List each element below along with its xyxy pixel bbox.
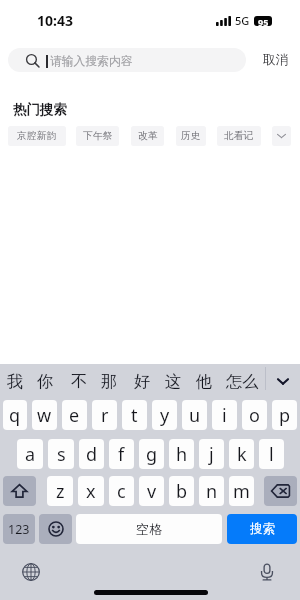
button[interactable]: y (152, 400, 177, 430)
staticText: 下午祭 (83, 130, 113, 142)
staticText: p (279, 403, 291, 428)
staticText: x (86, 479, 96, 504)
staticText: 不 (71, 371, 88, 391)
button[interactable]: 好 (131, 364, 153, 398)
button[interactable]: z (47, 476, 73, 506)
button[interactable]: c (109, 476, 134, 506)
button[interactable]: 取消 (263, 48, 299, 72)
staticText: z (56, 479, 65, 504)
staticText: 他 (196, 371, 213, 391)
button[interactable]: 搜索 (227, 514, 297, 544)
staticText: 10:43 (37, 11, 73, 30)
button[interactable]: a (17, 439, 43, 469)
staticText: s (57, 442, 66, 467)
button[interactable]: w (32, 400, 57, 430)
staticText: 这 (165, 371, 182, 391)
staticText: d (86, 442, 98, 467)
button[interactable]: s (48, 439, 74, 469)
button[interactable]: 怎么 (224, 364, 260, 398)
staticText: o (249, 403, 260, 428)
button[interactable]: l (259, 439, 284, 469)
staticText: i (222, 403, 227, 428)
staticText: 搜索 (250, 521, 275, 537)
staticText: 5G (235, 13, 250, 28)
staticText: 我 (7, 371, 24, 391)
staticText: 空格 (136, 521, 163, 538)
button[interactable]: 改革 (131, 126, 164, 146)
button[interactable]: Backspace (264, 476, 297, 506)
button[interactable]: Hide keyboard (266, 364, 300, 398)
staticText: e (69, 403, 80, 428)
staticText: 改革 (138, 130, 158, 142)
button[interactable]: p (272, 400, 297, 430)
staticText: l (269, 442, 274, 467)
staticText: 123 (8, 521, 30, 538)
button[interactable]: 京腔新韵 (8, 126, 66, 146)
staticText: t (131, 403, 138, 428)
button[interactable]: h (169, 439, 194, 469)
staticText: v (147, 479, 157, 504)
button[interactable]: 北看记 (217, 126, 261, 146)
button[interactable]: d (79, 439, 104, 469)
staticText: k (237, 442, 247, 467)
button[interactable]: r (92, 400, 117, 430)
staticText: a (25, 442, 36, 467)
button[interactable]: Expand hot searches (272, 126, 291, 146)
button[interactable]: 那 (98, 364, 120, 398)
staticText: u (189, 403, 201, 428)
staticText: 北看记 (224, 130, 254, 142)
button[interactable]: 不 (68, 364, 90, 398)
button[interactable]: 你 (34, 364, 56, 398)
staticText: w (37, 403, 52, 428)
staticText: r (101, 403, 109, 428)
staticText: 你 (37, 371, 54, 391)
staticText: y (160, 403, 170, 428)
staticText: g (146, 442, 158, 467)
button[interactable]: Change language (20, 561, 42, 583)
button[interactable]: 空格 (76, 514, 222, 544)
staticText: 取消 (263, 52, 289, 68)
staticText: 怎么 (226, 371, 259, 391)
staticText: 京腔新韵 (17, 130, 57, 142)
staticText: q (9, 403, 21, 428)
staticText: 那 (101, 371, 118, 391)
button[interactable]: o (242, 400, 267, 430)
button[interactable]: u (182, 400, 207, 430)
button[interactable]: n (199, 476, 224, 506)
button[interactable]: g (139, 439, 164, 469)
button[interactable]: 我 (4, 364, 26, 398)
button[interactable]: i (212, 400, 237, 430)
button[interactable]: q (3, 400, 27, 430)
button[interactable]: 下午祭 (76, 126, 119, 146)
button[interactable]: Shift (3, 476, 36, 506)
button[interactable]: 历史 (176, 126, 206, 146)
staticText: 历史 (181, 130, 201, 142)
staticText: m (233, 479, 250, 504)
staticText: 好 (134, 371, 151, 391)
staticText: b (176, 479, 188, 504)
button[interactable]: 123 (3, 514, 35, 544)
button[interactable]: Voice input (256, 561, 278, 583)
staticText: 热门搜索 (13, 101, 67, 118)
button[interactable]: m (229, 476, 254, 506)
staticText: f (118, 442, 125, 467)
button[interactable]: e (62, 400, 87, 430)
button[interactable]: 这 (162, 364, 184, 398)
button[interactable]: t (122, 400, 147, 430)
button[interactable]: 请输入搜索内容 (8, 48, 246, 72)
staticText: c (117, 479, 126, 504)
button[interactable]: x (78, 476, 104, 506)
staticText: 请输入搜索内容 (50, 54, 133, 69)
button[interactable]: v (139, 476, 164, 506)
staticText: h (176, 442, 188, 467)
button[interactable]: 他 (193, 364, 215, 398)
button[interactable]: Emoji (39, 514, 72, 544)
button[interactable]: f (109, 439, 134, 469)
button[interactable]: k (229, 439, 254, 469)
button[interactable]: b (169, 476, 194, 506)
button[interactable]: j (199, 439, 224, 469)
staticText: j (209, 442, 214, 467)
staticText: 95 (258, 16, 269, 26)
staticText: n (206, 479, 218, 504)
